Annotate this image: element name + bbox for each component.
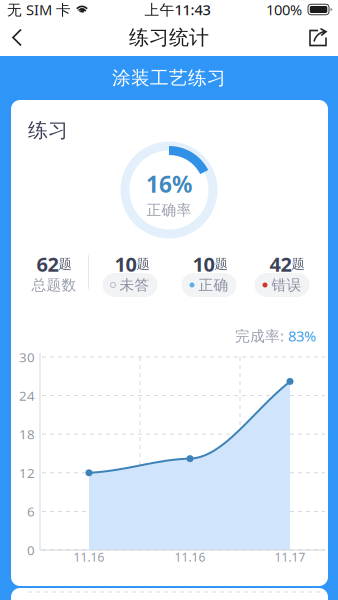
staticText: 42	[269, 251, 291, 277]
staticText: 正确	[198, 276, 228, 294]
staticText: 11.16	[73, 549, 104, 565]
staticText: 11.16	[174, 549, 205, 565]
staticText: 16%	[146, 169, 192, 199]
staticText: 100%	[266, 0, 302, 19]
staticText: 练习统计	[129, 25, 209, 50]
staticText: 涂装工艺练习	[112, 66, 226, 89]
staticText: 18	[19, 425, 35, 443]
staticText: 12	[19, 464, 35, 482]
staticText: 完成率:	[235, 326, 288, 345]
staticText: 题	[291, 256, 304, 272]
staticText: 错误	[271, 276, 301, 294]
staticText: 24	[19, 387, 35, 404]
staticText: 正确率	[146, 201, 191, 219]
staticText: 总题数	[31, 276, 76, 294]
staticText: 30	[19, 348, 35, 366]
staticText: 题	[58, 256, 71, 272]
staticText: 上午11:43	[144, 0, 210, 19]
staticText: 练习	[28, 118, 68, 143]
staticText: 无 SIM 卡	[7, 0, 71, 19]
staticText: 62	[36, 251, 58, 277]
staticText: 6	[27, 502, 35, 520]
staticText: 10	[192, 251, 214, 277]
staticText: 10	[114, 251, 136, 277]
staticText: 11.17	[274, 549, 305, 565]
staticText: 题	[214, 256, 227, 272]
button[interactable]: 分享	[304, 24, 332, 50]
staticText: 0	[27, 541, 35, 559]
staticText: 83%	[288, 326, 316, 345]
button[interactable]: 返回	[6, 24, 34, 50]
staticText: 未答	[119, 276, 149, 294]
staticText: 题	[136, 256, 149, 272]
